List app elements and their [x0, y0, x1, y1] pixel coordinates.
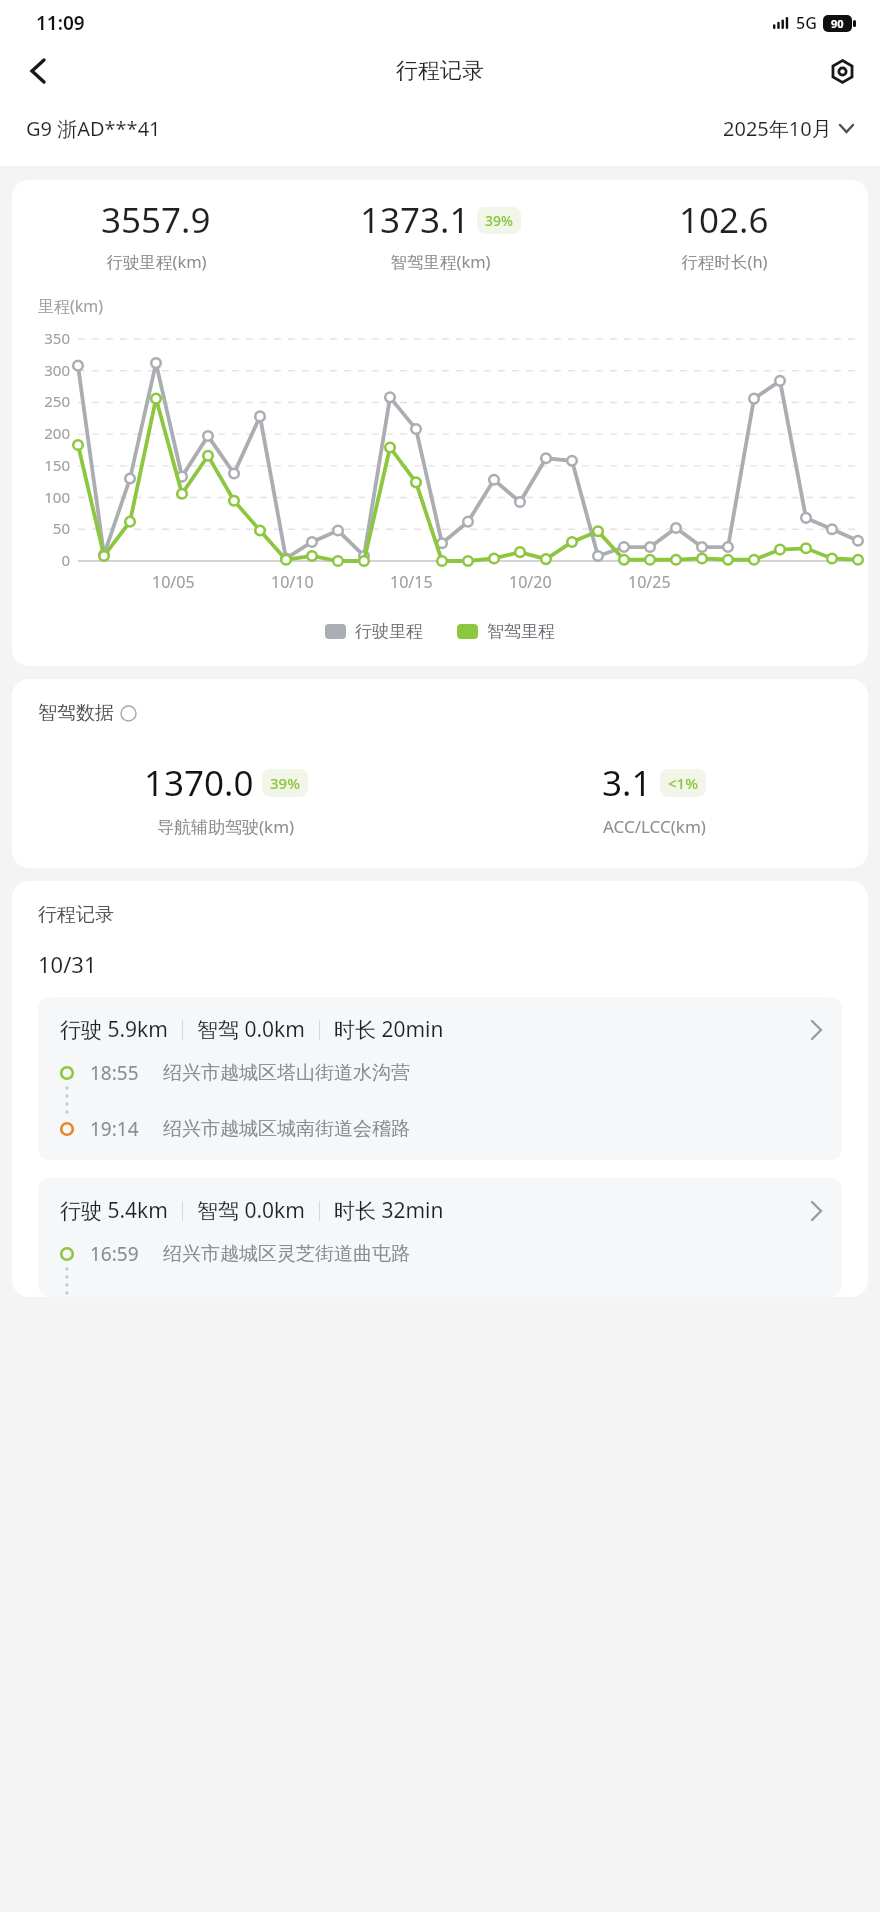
- staticText: 3.1: [602, 759, 652, 807]
- staticText: 智驾里程(km): [390, 250, 491, 273]
- button[interactable]: 102.6: [582, 196, 866, 273]
- staticText: 10/15: [390, 571, 433, 593]
- staticText: 10/25: [628, 571, 671, 593]
- staticText: 行驶 5.9km: [60, 1015, 168, 1044]
- staticText: 里程(km): [38, 295, 104, 317]
- staticText: 10/31: [38, 949, 97, 979]
- staticText: 1373.1: [360, 196, 470, 244]
- staticText: 100: [44, 487, 70, 507]
- staticText: <1%: [668, 773, 698, 793]
- button[interactable]: 智驾数据: [38, 701, 137, 725]
- staticText: 导航辅助驾驶(km): [157, 815, 295, 838]
- button[interactable]: 1373.1: [298, 196, 582, 273]
- staticText: 90: [831, 16, 844, 31]
- staticText: 智驾数据: [38, 701, 114, 725]
- button[interactable]: 设置: [818, 47, 866, 95]
- staticText: 3557.9: [101, 196, 211, 244]
- button[interactable]: 1370.0: [12, 759, 440, 838]
- staticText: 10/05: [152, 571, 195, 593]
- button[interactable]: 行驶里程: [325, 621, 423, 642]
- staticText: 绍兴市越城区灵芝街道曲屯路: [163, 1242, 410, 1266]
- staticText: 绍兴市越城区塔山街道水沟营: [163, 1061, 410, 1085]
- button[interactable]: 智驾里程: [457, 621, 555, 642]
- staticText: 行驶里程: [355, 621, 423, 642]
- staticText: 16:59: [90, 1241, 139, 1267]
- button[interactable]: 3557.9: [14, 196, 298, 273]
- staticText: 智驾 0.0km: [197, 1015, 305, 1044]
- staticText: 行程时长(h): [681, 250, 768, 273]
- staticText: 250: [44, 391, 70, 411]
- button[interactable]: 行驶 5.4km: [38, 1178, 842, 1297]
- staticText: 时长 20min: [334, 1015, 444, 1044]
- staticText: 智驾里程: [487, 621, 555, 642]
- staticText: 行程记录: [396, 57, 484, 85]
- staticText: 19:14: [90, 1116, 139, 1142]
- staticText: 50: [52, 518, 70, 538]
- staticText: 0: [61, 550, 70, 570]
- staticText: 350: [44, 328, 70, 348]
- staticText: 行程记录: [38, 903, 114, 927]
- staticText: 39%: [485, 211, 513, 230]
- staticText: 绍兴市越城区城南街道会稽路: [163, 1117, 410, 1141]
- button[interactable]: 3.1: [440, 759, 868, 838]
- staticText: 智驾 0.0km: [197, 1196, 305, 1225]
- staticText: 行驶 5.4km: [60, 1196, 168, 1225]
- button[interactable]: 行驶 5.9km: [38, 997, 842, 1160]
- staticText: ACC/LCC(km): [603, 815, 706, 838]
- staticText: 300: [44, 360, 70, 380]
- staticText: 行驶里程(km): [106, 250, 207, 273]
- staticText: 10/10: [271, 571, 314, 593]
- staticText: 150: [44, 455, 70, 475]
- staticText: G9 浙AD***41: [26, 115, 161, 142]
- staticText: 11:09: [36, 10, 85, 36]
- staticText: 102.6: [679, 196, 769, 244]
- button[interactable]: 2025年10月: [723, 115, 854, 142]
- staticText: 39%: [270, 773, 300, 793]
- staticText: 200: [44, 423, 70, 443]
- button[interactable]: G9 浙AD***41: [26, 115, 161, 142]
- staticText: 1370.0: [144, 759, 254, 807]
- staticText: 18:55: [90, 1060, 139, 1086]
- staticText: 10/20: [509, 571, 552, 593]
- staticText: 时长 32min: [334, 1196, 444, 1225]
- staticText: 5G: [796, 12, 817, 34]
- staticText: 2025年10月: [723, 115, 832, 142]
- button[interactable]: 返回: [14, 47, 62, 95]
